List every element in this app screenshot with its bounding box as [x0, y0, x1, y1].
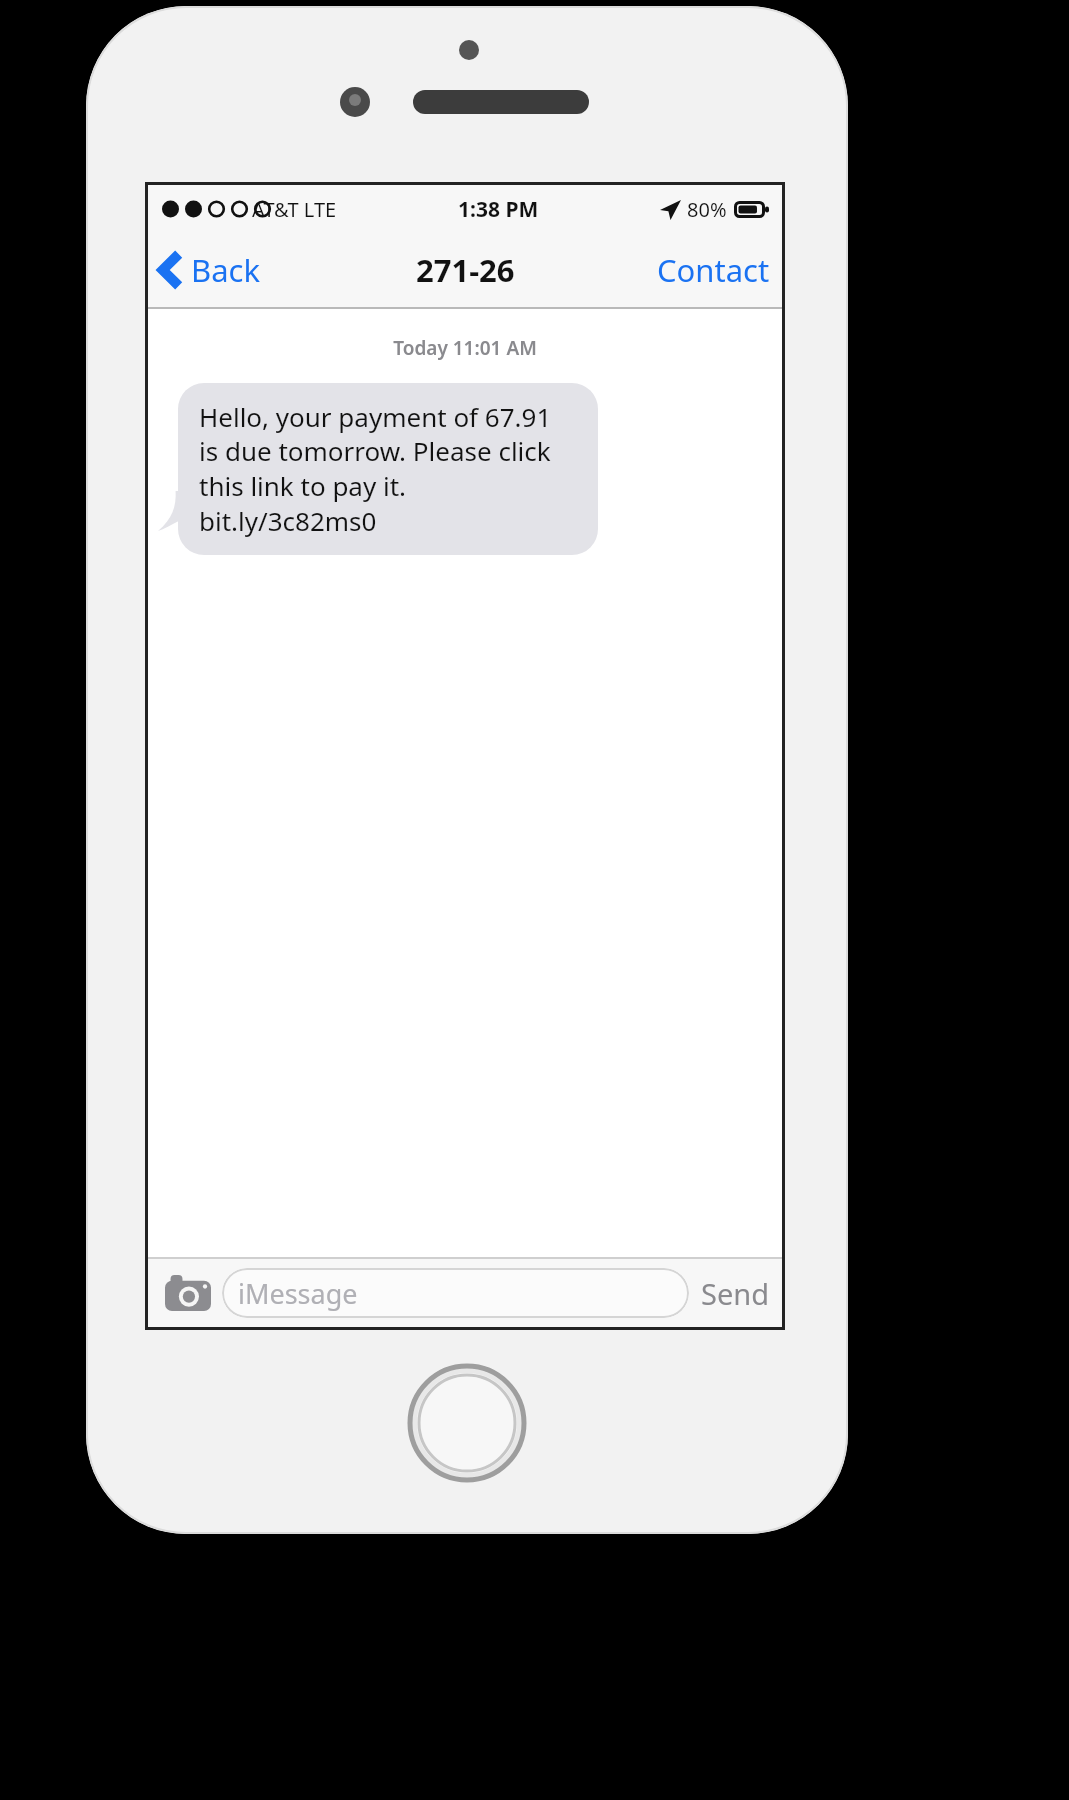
- button[interactable]: Take photo: [160, 1268, 216, 1318]
- staticText: AT&T LTE: [252, 196, 337, 223]
- staticText: Hello, your payment of 67.91 is due tomo…: [199, 399, 577, 539]
- staticText: 80%: [687, 196, 727, 223]
- staticText: Contact: [657, 249, 770, 291]
- staticText: Send: [701, 1274, 770, 1313]
- staticText: 1:38 PM: [458, 195, 539, 224]
- button[interactable]: iMessage: [222, 1268, 689, 1318]
- staticText: 271-26: [416, 249, 515, 291]
- staticText: Today 11:01 AM: [148, 335, 782, 361]
- staticText: Back: [191, 249, 260, 291]
- staticText: iMessage: [238, 1275, 358, 1312]
- button[interactable]: Contact: [657, 233, 770, 307]
- button[interactable]: Hello, your payment of 67.91 is due tomo…: [178, 383, 598, 555]
- button[interactable]: Home: [408, 1364, 526, 1482]
- button[interactable]: Send: [701, 1268, 770, 1318]
- button[interactable]: Back: [160, 233, 260, 307]
